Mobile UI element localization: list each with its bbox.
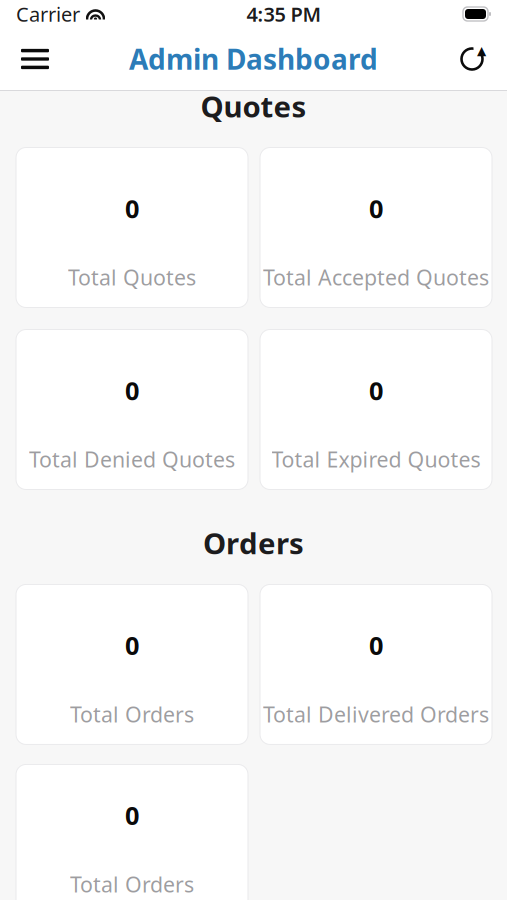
staticText: 0: [369, 628, 383, 662]
staticText: Total Orders: [70, 700, 194, 728]
button[interactable]: 0: [16, 764, 248, 900]
button[interactable]: 0: [16, 584, 248, 744]
staticText: Total Orders Inprogress: [70, 870, 194, 900]
staticText: 0: [125, 628, 139, 662]
button[interactable]: Menu: [12, 36, 58, 82]
staticText: 0: [369, 191, 383, 225]
staticText: Total Delivered Orders: [263, 700, 489, 728]
staticText: Total Denied Quotes: [29, 445, 235, 473]
staticText: 0: [125, 191, 139, 225]
staticText: Total Expired Quotes: [271, 445, 480, 473]
button[interactable]: 0: [16, 147, 248, 307]
staticText: Total Accepted Quotes: [263, 263, 489, 291]
button[interactable]: 0: [260, 584, 492, 744]
staticText: Quotes: [200, 86, 306, 125]
staticText: 0: [125, 798, 139, 832]
staticText: 0: [369, 373, 383, 407]
button[interactable]: 0: [16, 329, 248, 489]
button[interactable]: 0: [260, 147, 492, 307]
staticText: 4:35 PM: [246, 1, 321, 27]
staticText: Admin Dashboard: [129, 40, 378, 78]
staticText: Orders: [203, 523, 304, 562]
staticText: Carrier: [16, 1, 80, 27]
button[interactable]: 0: [260, 329, 492, 489]
button[interactable]: Refresh: [449, 36, 495, 82]
staticText: 0: [125, 373, 139, 407]
staticText: ▲: [477, 44, 486, 57]
staticText: Total Quotes: [68, 263, 196, 291]
